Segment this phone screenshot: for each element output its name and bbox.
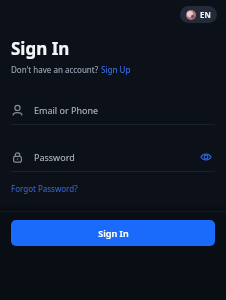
button[interactable]: Email or Phone [0,96,226,124]
staticText: Sign In [98,227,129,239]
button[interactable]: Sign Up [101,64,131,75]
staticText: Email or Phone [34,104,99,116]
button[interactable]: EN [180,6,217,23]
staticText: Sign In [11,37,70,60]
button[interactable]: Forgot Password? [11,183,78,194]
staticText: EN [200,9,211,20]
staticText: Don't have an account? [11,64,101,75]
button[interactable]: Sign In [11,220,215,246]
staticText: Password [34,151,75,163]
button[interactable]: Password [0,143,226,171]
button[interactable]: Show password [197,148,215,166]
